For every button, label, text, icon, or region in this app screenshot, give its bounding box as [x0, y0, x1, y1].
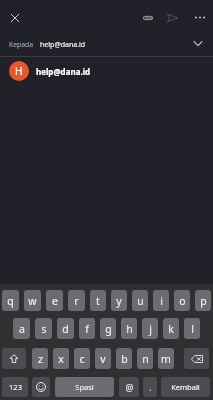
staticText: a — [19, 322, 25, 336]
button[interactable]: o — [174, 290, 190, 311]
staticText: x — [58, 352, 64, 366]
button[interactable]: p — [195, 290, 211, 311]
staticText: t — [96, 294, 100, 308]
staticText: y — [116, 294, 122, 308]
staticText: k — [168, 322, 174, 336]
button[interactable]: v — [95, 348, 111, 369]
button[interactable]: u — [132, 290, 148, 311]
button[interactable]: z — [32, 348, 48, 369]
button[interactable]: j — [142, 318, 158, 339]
button[interactable]: Shift — [2, 348, 26, 369]
button[interactable]: . — [143, 377, 157, 397]
button[interactable]: r — [68, 290, 85, 311]
staticText: s — [41, 322, 47, 336]
staticText: u — [137, 294, 144, 308]
button[interactable]: x — [53, 348, 69, 369]
button[interactable]: 123 — [2, 377, 28, 397]
staticText: f — [85, 322, 89, 336]
staticText: p — [200, 294, 207, 308]
button[interactable]: l — [184, 318, 200, 339]
button[interactable]: w — [24, 290, 41, 311]
button[interactable]: m — [158, 348, 174, 369]
staticText: b — [121, 352, 128, 366]
button[interactable]: c — [74, 348, 90, 369]
button[interactable]: Kepada — [0, 34, 213, 55]
button[interactable]: More options — [189, 7, 210, 28]
button[interactable]: s — [35, 318, 52, 339]
staticText: i — [160, 294, 163, 308]
button[interactable]: n — [137, 348, 153, 369]
button[interactable]: Kembali — [161, 377, 210, 397]
staticText: 123 — [9, 382, 22, 392]
button[interactable]: Show more recipient fields — [189, 34, 207, 52]
staticText: H — [15, 64, 23, 78]
button[interactable]: H — [0, 56, 213, 86]
button[interactable]: i — [153, 290, 169, 311]
staticText: g — [105, 322, 112, 336]
staticText: help@dana.id — [40, 40, 86, 50]
button[interactable]: Emoji — [32, 377, 50, 397]
staticText: h — [126, 322, 133, 336]
button[interactable]: Spasi — [55, 377, 114, 397]
staticText: e — [52, 294, 58, 308]
button[interactable]: a — [13, 318, 30, 339]
staticText: v — [100, 352, 106, 366]
staticText: z — [38, 352, 43, 366]
staticText: help@dana.id — [36, 66, 91, 77]
button[interactable]: Send — [162, 7, 183, 28]
button[interactable]: k — [163, 318, 179, 339]
staticText: w — [28, 294, 37, 308]
staticText: j — [149, 322, 152, 336]
staticText: o — [179, 294, 186, 308]
staticText: d — [62, 322, 69, 336]
button[interactable]: q — [2, 290, 19, 311]
button[interactable]: Attach file — [137, 7, 158, 28]
staticText: q — [7, 294, 14, 308]
button[interactable]: e — [46, 290, 63, 311]
button[interactable]: Backspace — [184, 348, 209, 369]
button[interactable]: Close — [4, 7, 25, 28]
staticText: Kembali — [171, 382, 200, 392]
staticText: . — [149, 381, 152, 393]
button[interactable]: t — [90, 290, 106, 311]
button[interactable]: d — [57, 318, 74, 339]
staticText: r — [74, 294, 79, 308]
staticText: Kepada — [9, 40, 34, 49]
staticText: m — [161, 352, 171, 366]
staticText: c — [79, 352, 85, 366]
button[interactable]: f — [79, 318, 95, 339]
staticText: l — [191, 322, 194, 336]
staticText: Spasi — [75, 382, 94, 392]
button[interactable]: y — [111, 290, 127, 311]
button[interactable]: g — [100, 318, 116, 339]
staticText: n — [142, 352, 149, 366]
button[interactable]: b — [116, 348, 132, 369]
button[interactable]: @ — [119, 377, 139, 397]
button[interactable]: h — [121, 318, 137, 339]
staticText: @ — [125, 381, 134, 393]
